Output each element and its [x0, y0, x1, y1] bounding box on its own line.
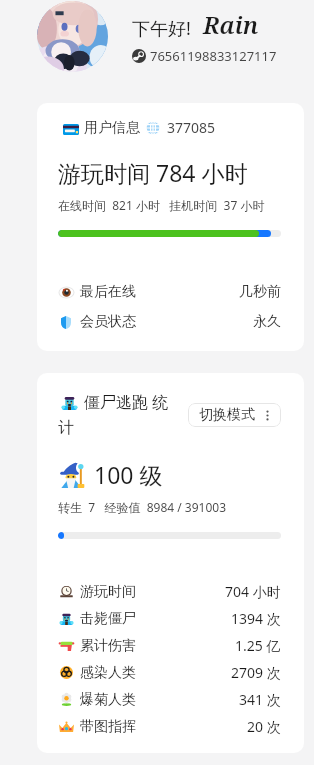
staticText: 在线时间 821 小时 挂机时间 37 小时: [58, 197, 265, 213]
staticText: 会员状态: [80, 313, 136, 331]
staticText: 704 小时: [225, 582, 281, 601]
staticText: 最后在线: [80, 283, 136, 301]
staticText: 游玩时间 784 小时: [58, 157, 248, 188]
staticText: 击毙僵尸: [80, 610, 136, 628]
button[interactable]: 游玩时间: [58, 582, 281, 601]
button[interactable]: 感染人类: [58, 663, 281, 682]
staticText: 带图指挥: [80, 718, 136, 736]
staticText: 切换模式: [199, 406, 255, 424]
staticText: 计: [58, 418, 74, 438]
staticText: 1.25 亿: [235, 636, 281, 655]
button[interactable]: 爆菊人类: [58, 690, 281, 709]
button[interactable]: 击毙僵尸: [58, 609, 281, 628]
staticText: 377085: [167, 118, 216, 137]
staticText: 1394 次: [231, 609, 281, 628]
button[interactable]: 最后在线: [58, 283, 281, 301]
staticText: 76561198833127117: [150, 47, 277, 65]
staticText: 100 级: [94, 459, 163, 490]
button[interactable]: 带图指挥: [58, 717, 281, 736]
staticText: 341 次: [239, 690, 281, 709]
staticText: 转生 7 经验值 8984 / 391003: [58, 499, 227, 515]
staticText: 爆菊人类: [80, 691, 136, 709]
button[interactable]: Avatar: [37, 1, 108, 72]
staticText: 下午好!: [132, 16, 191, 41]
staticText: 游玩时间: [80, 583, 136, 601]
staticText: 几秒前: [239, 283, 281, 301]
staticText: 20 次: [247, 717, 281, 736]
button[interactable]: 会员状态: [58, 313, 281, 331]
staticText: 累计伤害: [80, 637, 136, 655]
staticText: 永久: [253, 313, 281, 331]
staticText: 2709 次: [231, 663, 281, 682]
staticText: Rain: [203, 8, 259, 41]
button[interactable]: 累计伤害: [58, 636, 281, 655]
staticText: 感染人类: [80, 664, 136, 682]
staticText: 僵尸逃跑 统: [84, 391, 169, 413]
button[interactable]: 切换模式: [188, 403, 281, 427]
staticText: 用户信息: [84, 119, 140, 137]
